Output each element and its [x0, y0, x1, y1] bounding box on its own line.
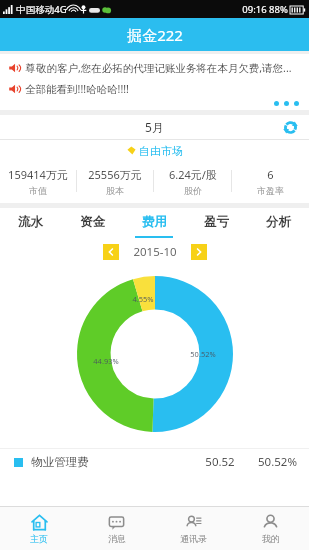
- staticText: 消息: [108, 533, 126, 544]
- button[interactable]: 消息: [78, 507, 155, 550]
- button[interactable]: 盈亏: [185, 208, 247, 236]
- button[interactable]: 流水: [0, 208, 61, 236]
- staticText: 2015-10: [133, 244, 177, 260]
- staticText: 5月: [145, 119, 164, 135]
- button[interactable]: Previous month: [103, 244, 119, 260]
- staticText: 6: [267, 167, 274, 182]
- staticText: 88%: [269, 3, 288, 16]
- staticText: 流水: [18, 214, 43, 230]
- staticText: 6.24元/股: [169, 167, 217, 182]
- staticText: 4.55%: [132, 294, 154, 304]
- staticText: 费用: [142, 214, 167, 230]
- button[interactable]: 资金: [61, 208, 123, 236]
- staticText: 市值: [29, 185, 47, 196]
- button[interactable]: 自由市场: [0, 140, 309, 161]
- button[interactable]: 我的: [232, 507, 309, 550]
- staticText: 中国移动4G: [16, 3, 67, 16]
- button[interactable]: 物业管理费: [0, 449, 309, 475]
- staticText: 资金: [80, 214, 105, 230]
- staticText: 50.52%: [258, 454, 297, 470]
- staticText: 自由市场: [139, 144, 183, 158]
- staticText: 股价: [184, 185, 202, 196]
- button[interactable]: 全部能看到!!!哈哈哈!!!!: [0, 81, 309, 97]
- button[interactable]: 分析: [247, 208, 309, 236]
- button[interactable]: 主页: [0, 507, 78, 550]
- staticText: 50.52: [205, 454, 235, 470]
- staticText: 09:16: [242, 3, 267, 16]
- staticText: 我的: [262, 533, 280, 544]
- button[interactable]: 6.24元/股: [154, 167, 231, 196]
- staticText: 分析: [266, 214, 291, 230]
- button[interactable]: 25556万元: [77, 167, 153, 196]
- button[interactable]: 159414万元: [0, 167, 76, 196]
- staticText: 尊敬的客户,您在必拓的代理记账业务将在本月欠费,请您...: [25, 61, 292, 75]
- staticText: 股本: [106, 185, 124, 196]
- staticText: 通讯录: [180, 533, 207, 544]
- staticText: 市盈率: [257, 185, 284, 196]
- staticText: 盈亏: [204, 214, 229, 230]
- button[interactable]: 尊敬的客户,您在必拓的代理记账业务将在本月欠费,请您...: [0, 60, 309, 76]
- button[interactable]: 通讯录: [155, 507, 232, 550]
- staticText: 25556万元: [88, 167, 142, 182]
- staticText: 主页: [30, 533, 48, 544]
- button[interactable]: 6: [232, 167, 309, 196]
- staticText: 全部能看到!!!哈哈哈!!!!: [25, 82, 129, 96]
- staticText: 物业管理费: [31, 455, 89, 469]
- staticText: 44.93%: [93, 356, 119, 366]
- button[interactable]: 费用: [123, 208, 185, 236]
- staticText: 50.52%: [190, 349, 216, 359]
- button[interactable]: Refresh: [279, 116, 301, 138]
- staticText: 掘金222: [127, 25, 183, 45]
- staticText: 159414万元: [8, 167, 68, 182]
- button[interactable]: Next month: [191, 244, 207, 260]
